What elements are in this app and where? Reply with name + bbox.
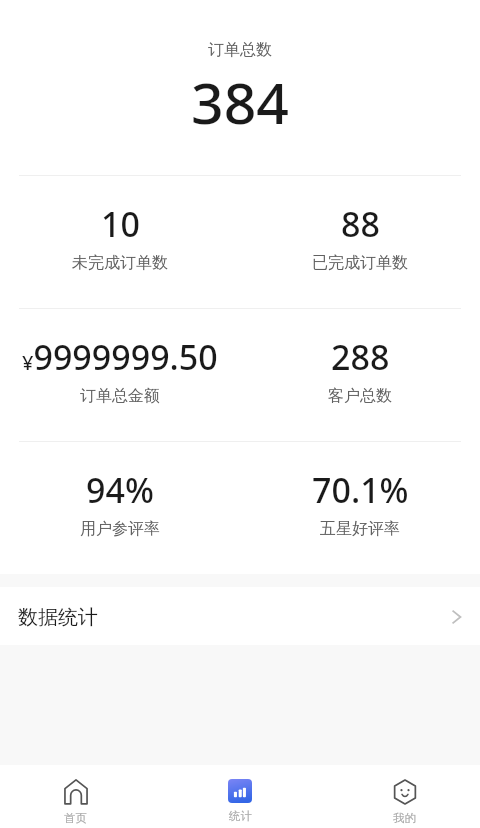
staticText: ¥9999999.50 — [22, 334, 218, 380]
staticText: 10 — [101, 201, 140, 247]
staticText: 288 — [331, 334, 390, 380]
staticText: 统计 — [229, 809, 252, 823]
staticText: 数据统计 — [18, 605, 98, 630]
other: 查看数据统计 — [451, 609, 462, 625]
staticText: 已完成订单数 — [312, 253, 408, 273]
staticText: 客户总数 — [328, 386, 392, 406]
staticText: 384 — [0, 63, 480, 141]
staticText: 88 — [341, 201, 380, 247]
staticText: 五星好评率 — [320, 519, 400, 539]
staticText: 70.1% — [312, 467, 409, 513]
staticText: 首页 — [64, 811, 87, 825]
staticText: 用户参评率 — [80, 519, 160, 539]
staticText: 我的 — [393, 811, 416, 825]
staticText: 未完成订单数 — [72, 253, 168, 273]
staticText: 订单总数 — [0, 40, 480, 60]
staticText: 94% — [86, 467, 154, 513]
other: 统计 — [228, 779, 252, 803]
button[interactable]: 我的 — [329, 765, 480, 825]
staticText: 订单总金额 — [80, 386, 160, 406]
other: 我的 — [392, 779, 418, 805]
button[interactable]: 统计 — [160, 765, 320, 823]
button[interactable]: 数据统计 — [0, 587, 480, 645]
other: 首页 — [63, 779, 89, 805]
button[interactable]: 首页 — [0, 765, 151, 825]
